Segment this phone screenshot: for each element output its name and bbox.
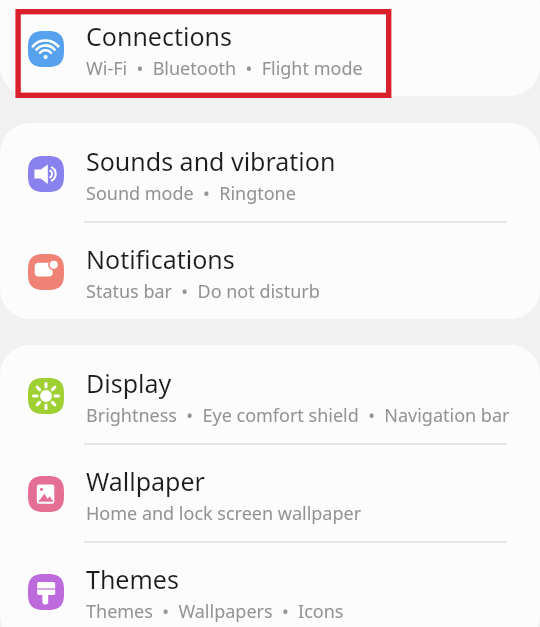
- button[interactable]: Wallpaper: [0, 443, 540, 541]
- button[interactable]: Connections: [0, 0, 540, 96]
- staticText: Connections: [86, 19, 232, 53]
- staticText: Wi-Fi • Bluetooth • Flight mode: [86, 56, 363, 81]
- staticText: Brightness • Eye comfort shield • Naviga…: [86, 403, 510, 428]
- staticText: Home and lock screen wallpaper: [86, 501, 362, 526]
- button[interactable]: Display: [0, 345, 540, 443]
- staticText: Themes • Wallpapers • Icons: [86, 599, 344, 624]
- staticText: Status bar • Do not disturb: [86, 279, 320, 304]
- button[interactable]: Notifications: [0, 221, 540, 319]
- staticText: Wallpaper: [86, 464, 205, 498]
- staticText: Sounds and vibration: [86, 144, 336, 178]
- staticText: Sound mode • Ringtone: [86, 181, 296, 206]
- button[interactable]: Sounds and vibration: [0, 123, 540, 221]
- button[interactable]: Themes: [0, 541, 540, 627]
- staticText: Notifications: [86, 242, 235, 276]
- staticText: Themes: [86, 562, 179, 596]
- staticText: Display: [86, 366, 172, 400]
